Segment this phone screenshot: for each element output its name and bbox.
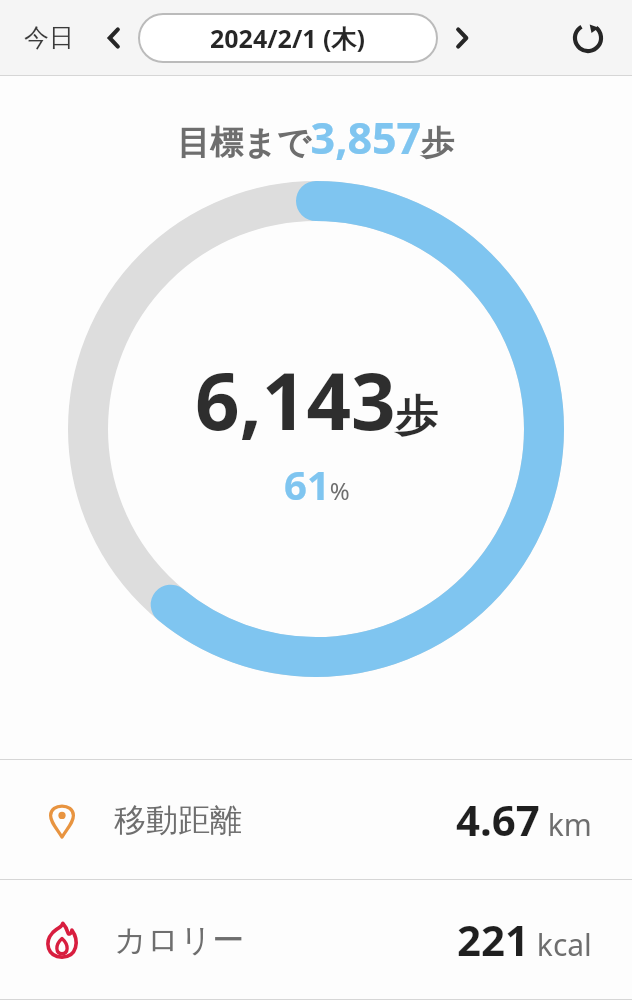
staticText: 目標まで3,857歩 bbox=[177, 108, 455, 167]
button[interactable]: Next day bbox=[440, 16, 484, 60]
staticText: カロリー bbox=[114, 920, 245, 960]
button[interactable]: カロリー bbox=[0, 880, 632, 999]
staticText: 今日 bbox=[24, 22, 74, 53]
staticText: 61% bbox=[284, 457, 350, 511]
button[interactable]: 2024/2/1 (木) bbox=[138, 13, 438, 63]
staticText: 2024/2/1 (木) bbox=[210, 21, 366, 55]
staticText: 6,143歩 bbox=[195, 347, 438, 453]
button[interactable]: Refresh bbox=[558, 8, 618, 68]
staticText: 移動距離 bbox=[114, 800, 242, 840]
button[interactable]: 今日 bbox=[0, 12, 86, 63]
staticText: 221 kcal bbox=[457, 911, 592, 968]
staticText: 4.67 km bbox=[456, 791, 592, 848]
button[interactable]: 移動距離 bbox=[0, 760, 632, 879]
button[interactable]: Previous day bbox=[92, 16, 136, 60]
